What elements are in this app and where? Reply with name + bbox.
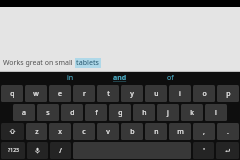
button[interactable]: tablets	[76, 58, 100, 68]
staticText: f	[95, 108, 98, 118]
staticText: t	[107, 89, 110, 99]
staticText: i	[179, 89, 181, 99]
button[interactable]: Voice input	[27, 142, 48, 159]
staticText: in	[67, 73, 74, 83]
button[interactable]: ,	[193, 123, 215, 140]
button[interactable]: k	[181, 104, 203, 121]
button[interactable]: w	[25, 85, 47, 102]
button[interactable]: i	[169, 85, 191, 102]
button[interactable]: v	[97, 123, 119, 140]
staticText: n	[154, 127, 159, 137]
staticText: s	[46, 108, 50, 118]
staticText: j	[167, 108, 169, 118]
button[interactable]: z	[26, 123, 47, 140]
button[interactable]: y	[121, 85, 143, 102]
button[interactable]: of	[145, 72, 195, 84]
button[interactable]: d	[61, 104, 83, 121]
staticText: v	[106, 127, 110, 137]
staticText: of	[167, 73, 174, 83]
button[interactable]: s	[37, 104, 59, 121]
staticText: y	[130, 89, 134, 99]
button[interactable]: and	[95, 72, 145, 84]
staticText: ,	[203, 127, 205, 137]
button[interactable]: n	[145, 123, 167, 140]
staticText: g	[118, 108, 123, 118]
staticText: '	[203, 146, 205, 156]
staticText: Works great on small	[3, 58, 75, 68]
button[interactable]: in	[45, 72, 95, 84]
button[interactable]: Enter	[216, 142, 239, 159]
button[interactable]: b	[121, 123, 143, 140]
button[interactable]: p	[217, 85, 239, 102]
button[interactable]: t	[97, 85, 119, 102]
staticText: and	[113, 73, 127, 83]
button[interactable]: c	[73, 123, 95, 140]
staticText: m	[177, 127, 184, 137]
staticText: k	[190, 108, 194, 118]
staticText: e	[58, 89, 62, 99]
button[interactable]: ?123	[1, 142, 25, 159]
staticText: .	[227, 127, 229, 137]
button[interactable]: l	[205, 104, 227, 121]
button[interactable]: e	[49, 85, 71, 102]
staticText: d	[70, 108, 75, 118]
staticText: x	[58, 127, 62, 137]
button[interactable]: Shift	[1, 123, 24, 140]
staticText: c	[82, 127, 86, 137]
staticText: z	[35, 127, 39, 137]
button[interactable]: g	[109, 104, 131, 121]
button[interactable]: r	[73, 85, 95, 102]
staticText: b	[130, 127, 135, 137]
button[interactable]: u	[145, 85, 167, 102]
button[interactable]: m	[169, 123, 191, 140]
staticText: o	[202, 89, 207, 99]
staticText: /	[59, 146, 62, 156]
staticText: h	[142, 108, 147, 118]
staticText: p	[226, 89, 231, 99]
button[interactable]: /	[50, 142, 71, 159]
button[interactable]: f	[85, 104, 107, 121]
staticText: w	[33, 89, 39, 99]
staticText: tablets	[76, 58, 100, 68]
staticText: u	[154, 89, 159, 99]
button[interactable]: .	[217, 123, 239, 140]
button[interactable]: h	[133, 104, 155, 121]
button[interactable]: x	[49, 123, 71, 140]
button[interactable]: q	[1, 85, 23, 102]
button[interactable]: a	[13, 104, 35, 121]
staticText: l	[215, 108, 217, 118]
button[interactable]: j	[157, 104, 179, 121]
staticText: r	[83, 89, 86, 99]
staticText: a	[22, 108, 26, 118]
button[interactable]: o	[193, 85, 215, 102]
staticText: ?123	[8, 147, 19, 154]
button[interactable]: '	[193, 142, 214, 159]
staticText: q	[10, 89, 15, 99]
